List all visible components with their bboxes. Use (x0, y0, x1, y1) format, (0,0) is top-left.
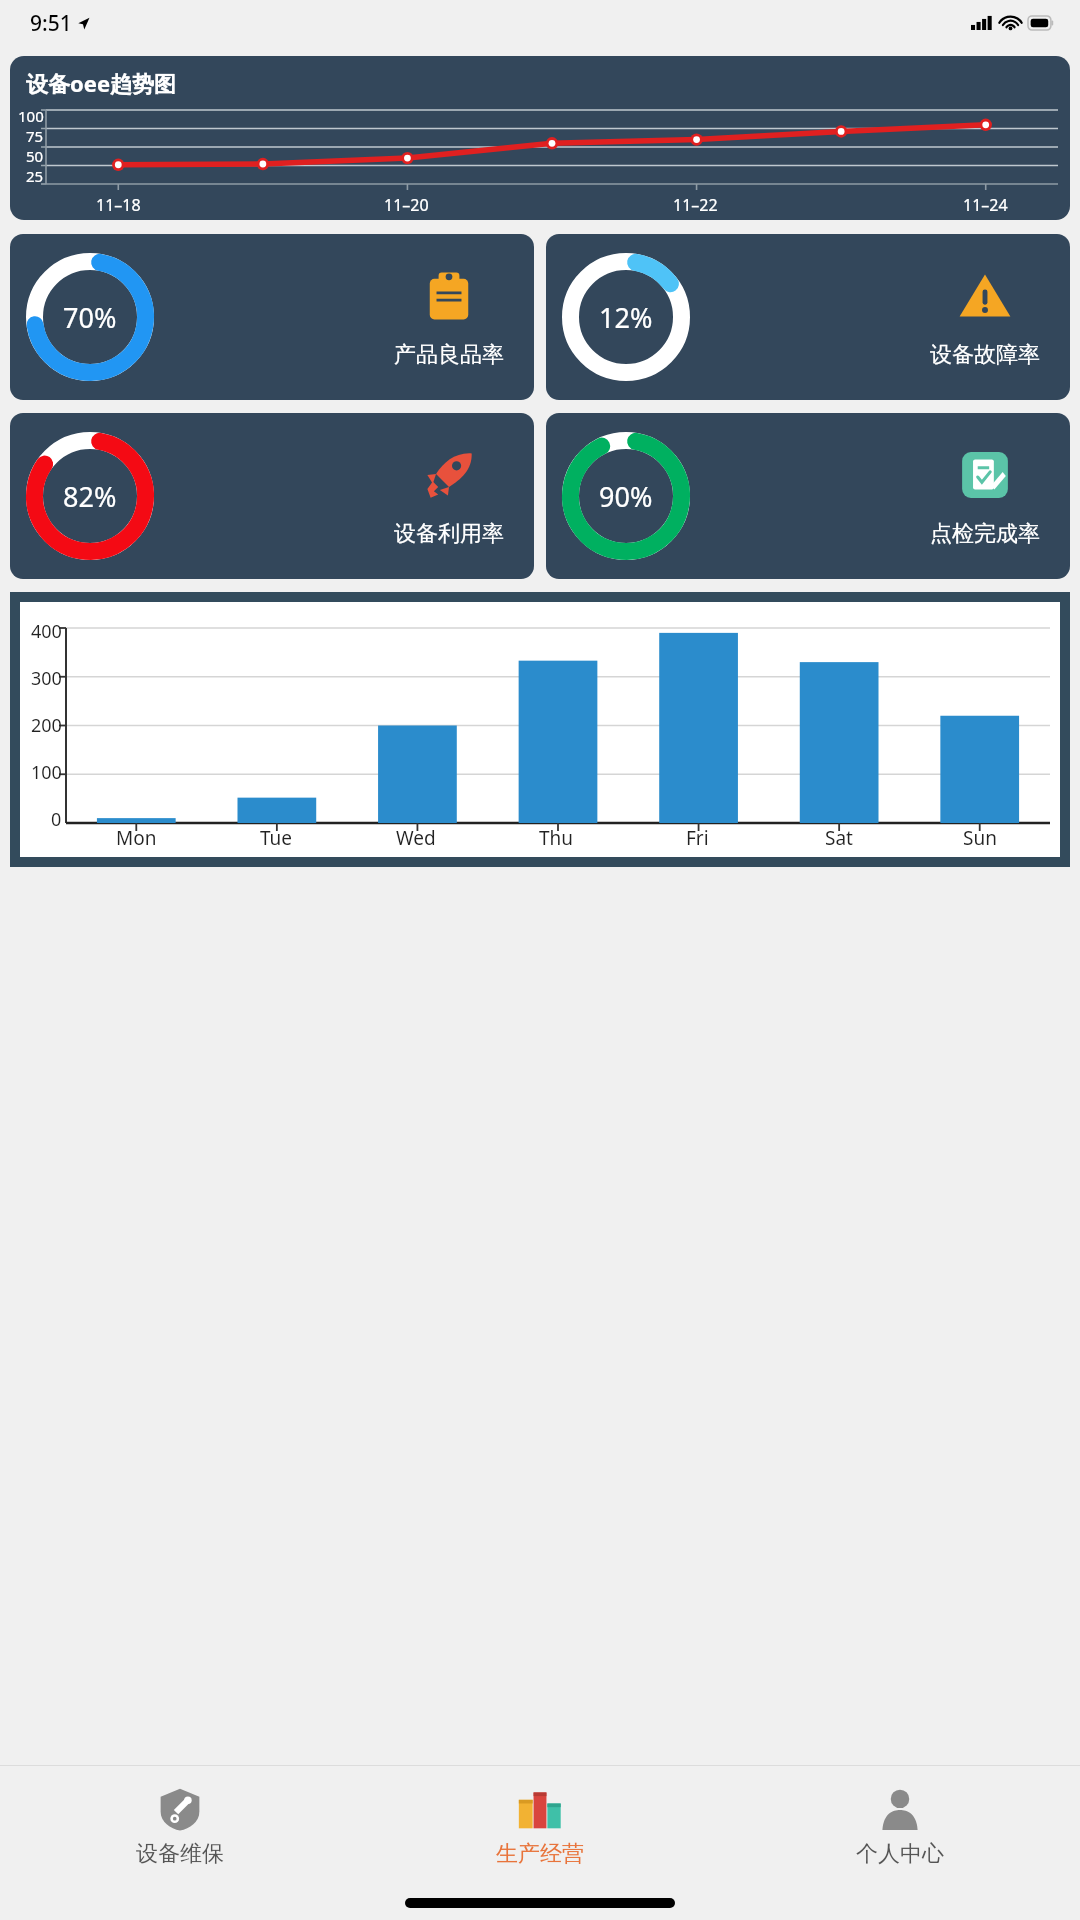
staticText: 11–24 (963, 194, 1008, 216)
staticText: Sat (825, 825, 853, 851)
button[interactable]: 设备维保 (0, 1766, 360, 1886)
staticText: 300 (31, 666, 62, 691)
staticText: 75 (26, 126, 44, 146)
staticText: 400 (31, 619, 62, 644)
button[interactable]: 70% (10, 234, 534, 400)
staticText: 点检完成率 (930, 520, 1040, 548)
button[interactable]: 个人中心 (720, 1766, 1080, 1886)
staticText: 82% (63, 478, 117, 515)
staticText: 70% (63, 299, 117, 336)
staticText: Fri (686, 825, 709, 851)
other: 个人中心 (878, 1787, 922, 1831)
staticText: 0 (51, 807, 62, 832)
staticText: 90% (599, 478, 653, 515)
button[interactable]: 生产经营 (360, 1766, 720, 1886)
staticText: 产品良品率 (394, 341, 504, 369)
button[interactable]: 设备oee趋势图 (10, 56, 1070, 220)
staticText: 12% (599, 299, 653, 336)
button[interactable]: 90% (546, 413, 1070, 579)
staticText: 设备oee趋势图 (26, 68, 177, 98)
staticText: Tue (260, 825, 293, 851)
staticText: 100 (31, 760, 62, 785)
staticText: 11–20 (384, 194, 429, 216)
staticText: 25 (26, 166, 44, 186)
staticText: Sun (963, 825, 997, 851)
staticText: Thu (539, 825, 574, 851)
button[interactable]: 12% (546, 234, 1070, 400)
other: 设备维保 (158, 1787, 202, 1831)
staticText: 11–22 (673, 194, 718, 216)
staticText: 200 (31, 713, 62, 738)
button[interactable]: 82% (10, 413, 534, 579)
staticText: Mon (116, 825, 157, 851)
staticText: 11–18 (96, 194, 141, 216)
staticText: 设备利用率 (394, 520, 504, 548)
staticText: 生产经营 (496, 1840, 584, 1868)
other: 生产经营 (517, 1786, 563, 1832)
staticText: 100 (18, 106, 44, 126)
staticText: Wed (396, 825, 436, 851)
staticText: 个人中心 (856, 1840, 944, 1868)
staticText: 设备维保 (136, 1840, 224, 1868)
staticText: 设备故障率 (930, 341, 1040, 369)
button[interactable]: 400 (10, 592, 1070, 867)
staticText: 50 (26, 146, 44, 166)
staticText: 9:51 (30, 9, 72, 38)
